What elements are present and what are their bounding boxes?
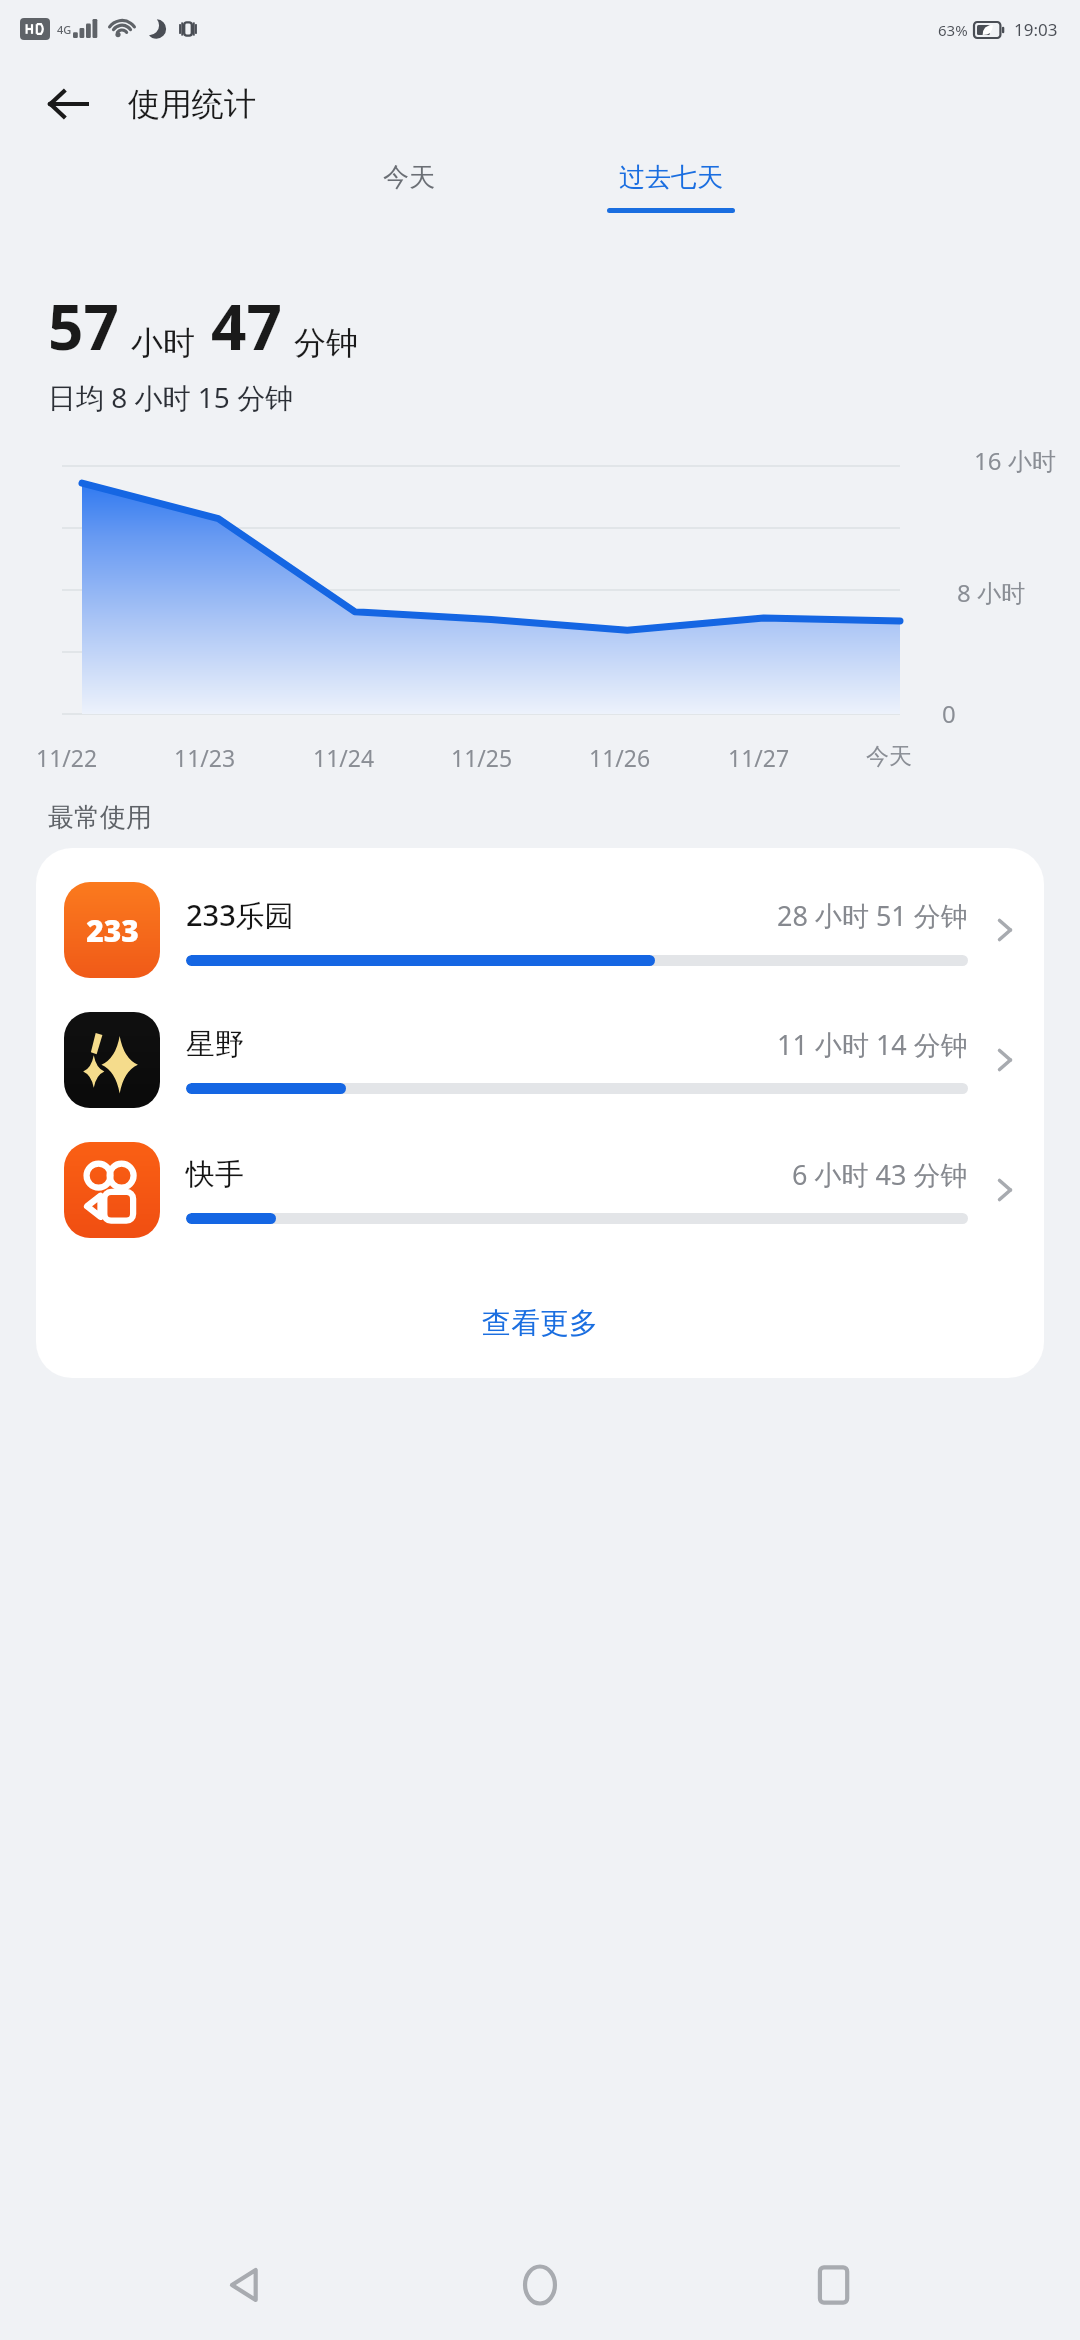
staticText: 最常使用 (48, 801, 152, 834)
button[interactable]: 快手 (36, 1142, 1044, 1238)
button[interactable]: Recents (786, 2237, 882, 2333)
staticText: 星野 (186, 1026, 244, 1063)
staticText: 11/27 (728, 742, 790, 773)
staticText: 19:03 (1014, 18, 1058, 41)
staticText: 63% (938, 20, 968, 40)
staticText: 0 (942, 697, 956, 730)
button[interactable]: 过去七天 (571, 161, 771, 251)
staticText: 11/23 (174, 742, 236, 773)
staticText: 分钟 (294, 323, 358, 363)
staticText: 4G (57, 22, 72, 37)
button[interactable]: 查看更多 (36, 1268, 1044, 1378)
staticText: 16 小时 (974, 444, 1056, 477)
staticText: 小时 (131, 323, 195, 363)
staticText: 28 小时 51 分钟 (777, 897, 968, 934)
staticText: 日均 8 小时 15 分钟 (48, 378, 294, 416)
button[interactable]: 233 (36, 882, 1044, 978)
staticText: 233 (86, 910, 139, 951)
staticText: 快手 (186, 1156, 244, 1193)
staticText: 使用统计 (128, 84, 256, 124)
staticText: 233乐园 (186, 895, 294, 935)
staticText: 47 (211, 284, 282, 368)
staticText: 57 (48, 284, 119, 368)
button[interactable]: Back (198, 2237, 294, 2333)
staticText: 11/24 (313, 742, 375, 773)
staticText: 11 小时 14 分钟 (777, 1026, 968, 1063)
staticText: 6 小时 43 分钟 (792, 1156, 968, 1193)
button[interactable]: 星野 (36, 1012, 1044, 1108)
button[interactable]: 今天 (309, 161, 509, 251)
button[interactable]: Back (40, 76, 96, 132)
staticText: 查看更多 (482, 1305, 598, 1342)
staticText: 11/25 (451, 742, 513, 773)
staticText: 11/26 (589, 742, 651, 773)
staticText: 11/22 (36, 742, 98, 773)
staticText: 过去七天 (619, 161, 723, 194)
staticText: 今天 (383, 161, 435, 194)
staticText: 今天 (866, 742, 912, 771)
button[interactable]: Home (492, 2237, 588, 2333)
staticText: 8 小时 (957, 576, 1025, 609)
